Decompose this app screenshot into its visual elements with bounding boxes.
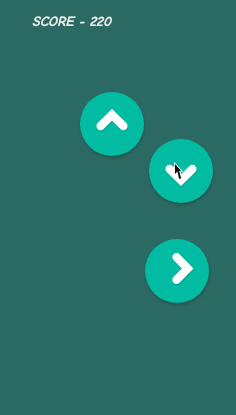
button[interactable]: Move up: [72, 84, 152, 164]
staticText: SCORE - 220: [32, 13, 112, 29]
button[interactable]: Move down: [141, 131, 221, 211]
button[interactable]: Move right: [137, 231, 217, 311]
